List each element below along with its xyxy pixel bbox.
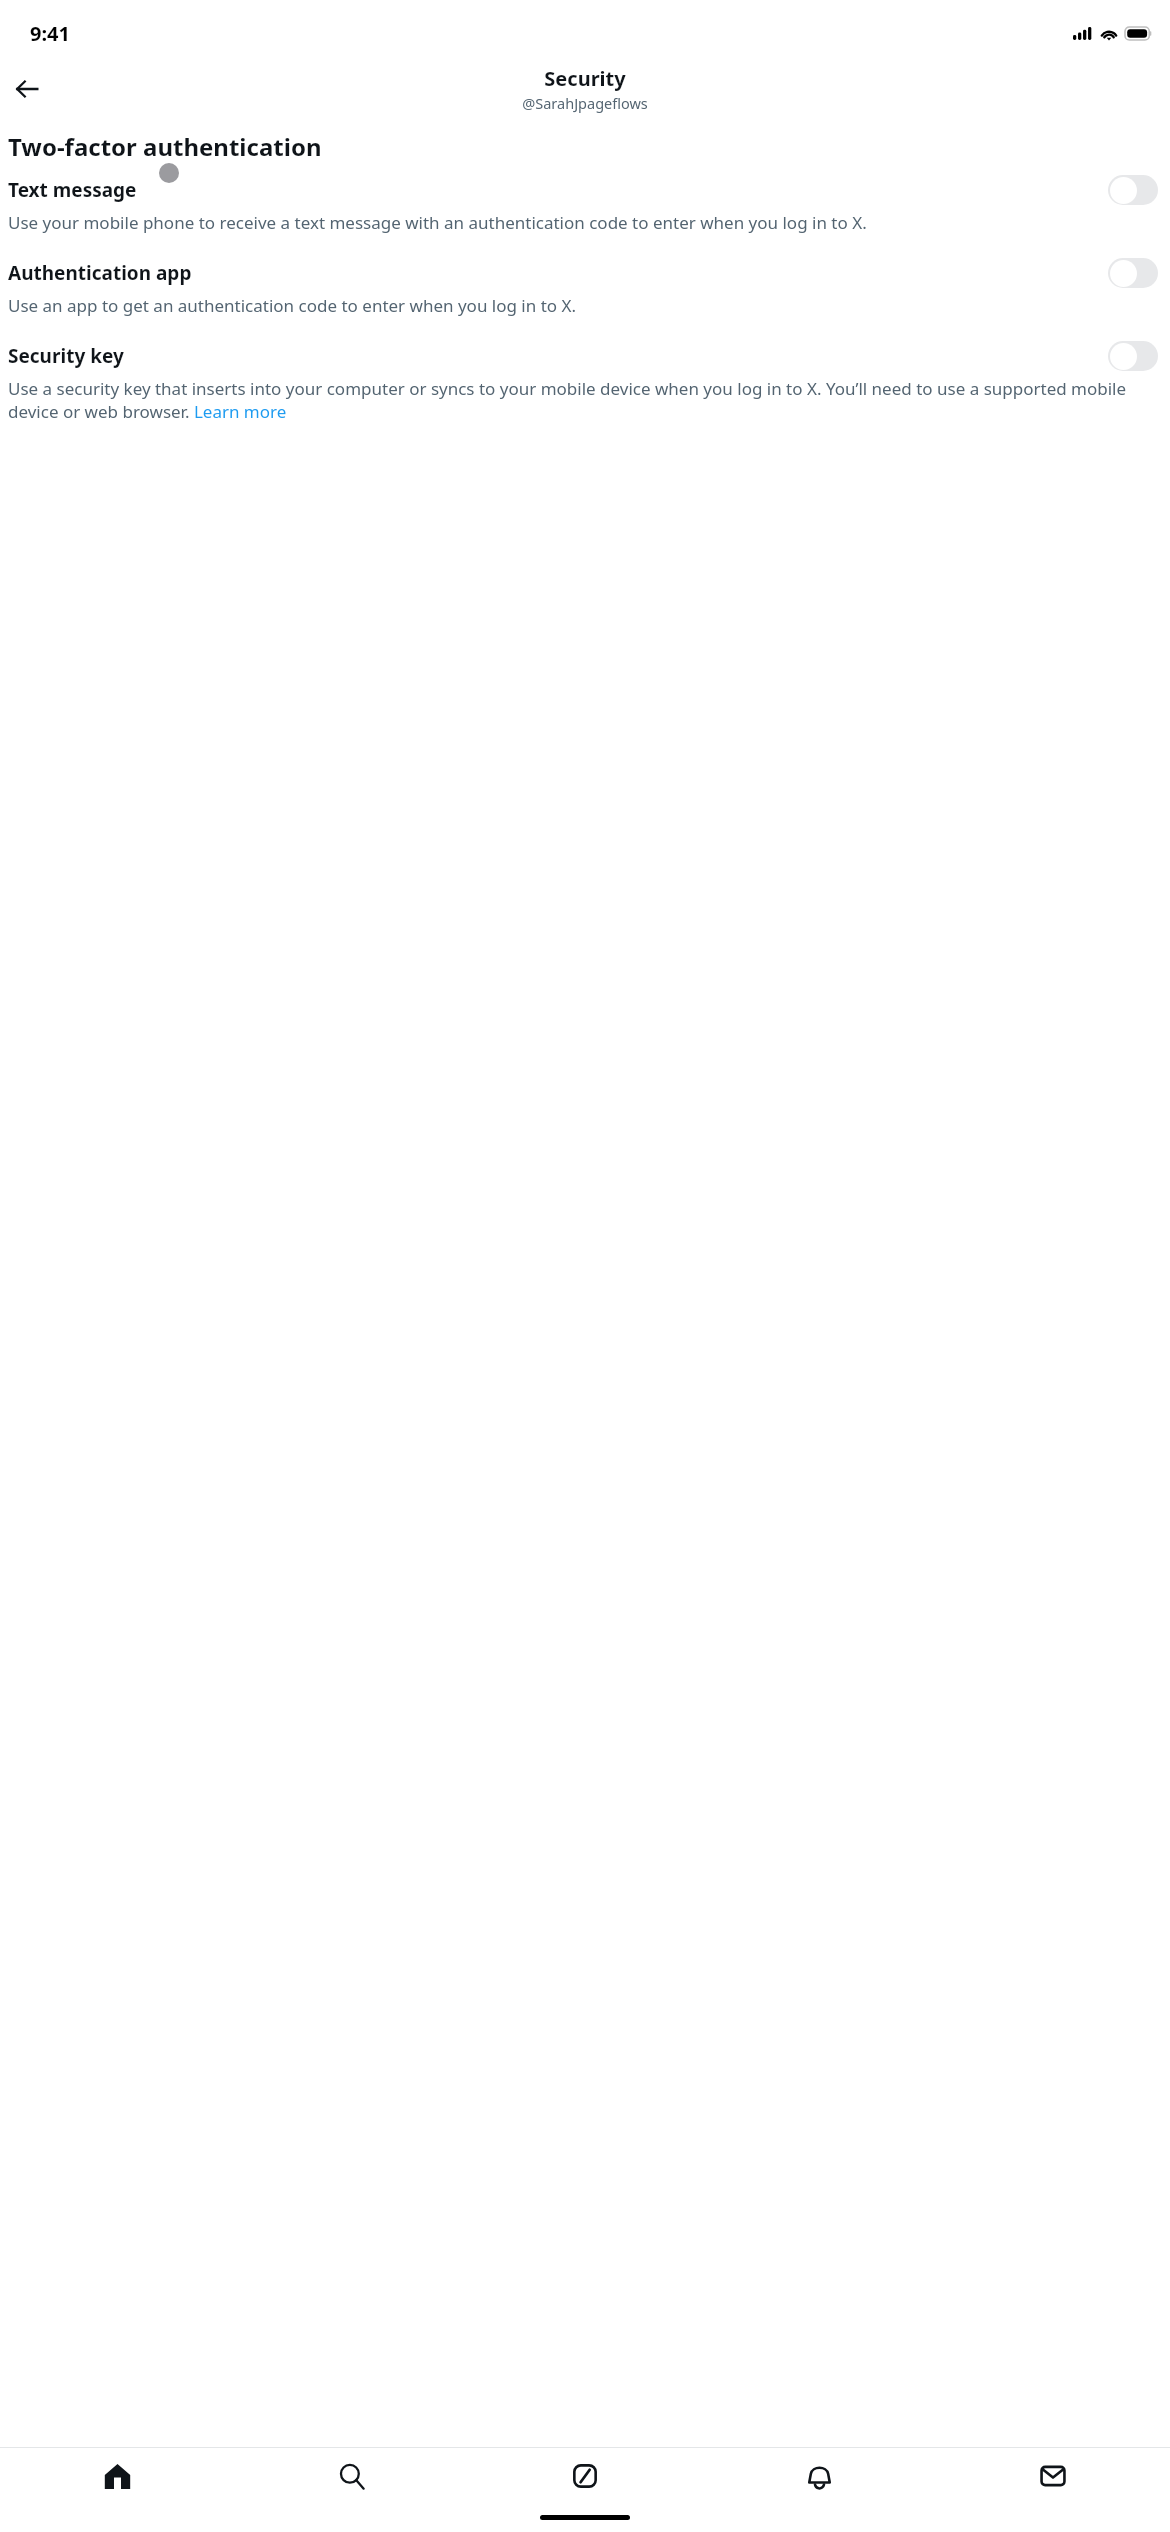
staticText: Text message xyxy=(8,177,1108,203)
button[interactable]: Toggle xyxy=(1108,258,1158,288)
button[interactable]: Grok xyxy=(468,2448,702,2504)
button[interactable]: Notifications xyxy=(702,2448,936,2504)
button[interactable]: Toggle xyxy=(1108,175,1158,205)
button[interactable]: Back xyxy=(4,66,50,112)
staticText: @SarahJpageflows xyxy=(522,93,648,113)
button[interactable]: Search xyxy=(234,2448,468,2504)
staticText: 9:41 xyxy=(30,20,70,47)
button[interactable]: Toggle xyxy=(1108,341,1158,371)
staticText: Use an app to get an authentication code… xyxy=(8,294,577,317)
staticText: Security key xyxy=(8,343,1108,369)
staticText: Authentication app xyxy=(8,260,1108,286)
button[interactable]: Home xyxy=(0,2448,234,2504)
staticText: Use your mobile phone to receive a text … xyxy=(8,211,867,234)
staticText: Two-factor authentication xyxy=(8,130,322,163)
button[interactable]: Messages xyxy=(936,2448,1170,2504)
staticText: Security xyxy=(544,65,626,92)
staticText: Use a security key that inserts into you… xyxy=(8,377,1162,423)
